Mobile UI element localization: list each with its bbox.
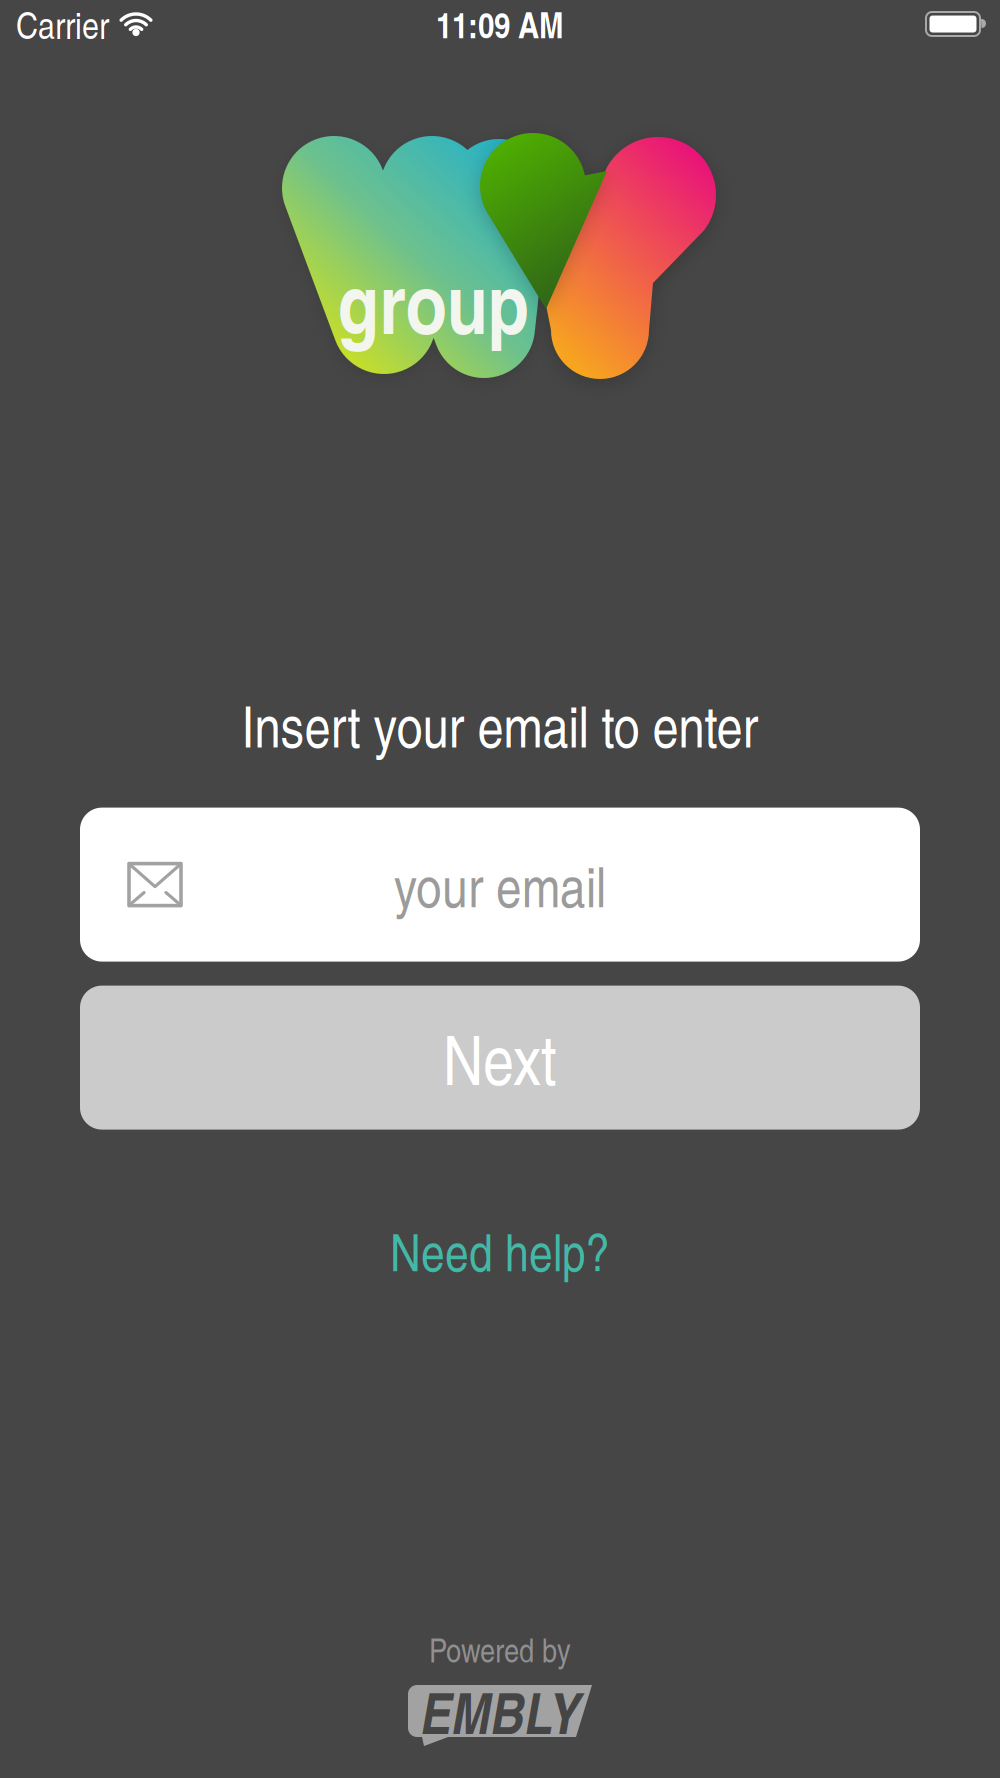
button[interactable]: Next [80, 986, 920, 1130]
button[interactable]: Embly [408, 1685, 592, 1746]
staticText: group [337, 243, 528, 359]
staticText: Insert your email to enter [241, 685, 758, 764]
staticText: your email [394, 846, 606, 923]
button[interactable]: your email [80, 808, 920, 962]
staticText: Powered by [429, 1626, 571, 1672]
staticText: EMBLY [420, 1671, 579, 1751]
staticText: Next [443, 1011, 557, 1104]
staticText: Carrier [16, 0, 109, 50]
staticText: Need help? [390, 1215, 610, 1286]
button[interactable]: Need help? [390, 1215, 610, 1286]
staticText: 11:09 AM [436, 0, 564, 49]
